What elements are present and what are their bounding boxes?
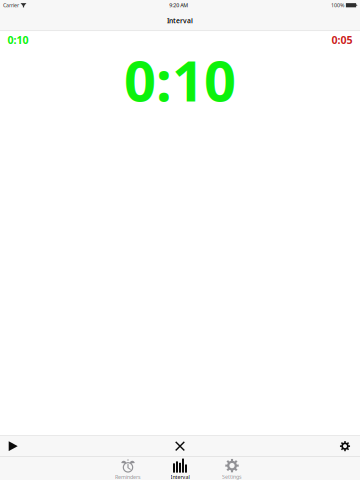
staticText: Interval xyxy=(170,473,189,480)
staticText: Reminders xyxy=(115,473,141,480)
staticText: Settings xyxy=(222,473,242,480)
staticText: 0:10 xyxy=(7,33,28,47)
button[interactable]: Reminders xyxy=(102,457,154,480)
staticText: Interval xyxy=(167,16,193,25)
button[interactable]: Play xyxy=(0,436,26,456)
staticText: 0:10 xyxy=(124,43,236,117)
staticText: Carrier xyxy=(3,2,19,9)
button[interactable]: Settings xyxy=(206,457,258,480)
button[interactable]: Interval xyxy=(154,457,206,480)
button[interactable]: Stop xyxy=(167,436,193,456)
staticText: 100% xyxy=(331,2,344,9)
button[interactable]: Settings xyxy=(332,436,358,456)
staticText: 0:05 xyxy=(331,33,352,47)
staticText: 9:20 AM xyxy=(169,2,188,9)
